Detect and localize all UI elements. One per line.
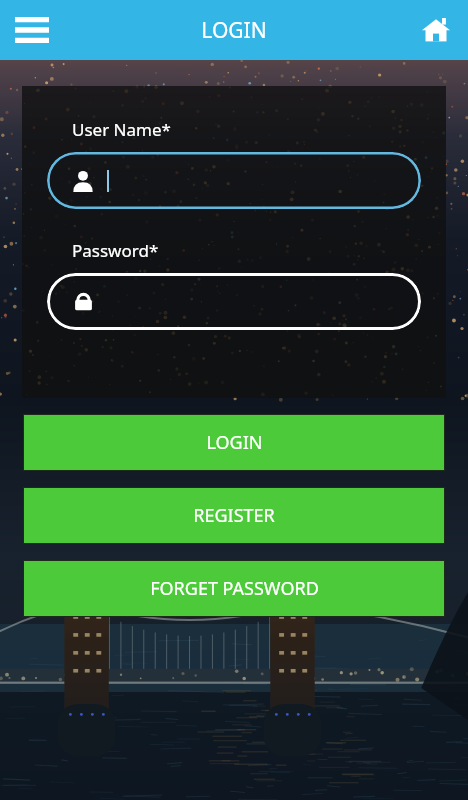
button[interactable]: LOGIN [24,415,444,470]
staticText: LOGIN [201,16,267,45]
button[interactable]: FORGET PASSWORD [24,561,444,616]
button[interactable] [47,273,421,330]
button[interactable] [47,152,421,209]
button[interactable]: Open navigation menu [8,6,56,54]
staticText: User Name* [72,118,171,141]
button[interactable]: REGISTER [24,488,444,543]
staticText: Password* [72,239,159,262]
staticText: LOGIN [206,430,263,455]
button[interactable]: Home [414,8,458,52]
staticText: FORGET PASSWORD [150,576,319,601]
staticText: REGISTER [193,503,275,528]
